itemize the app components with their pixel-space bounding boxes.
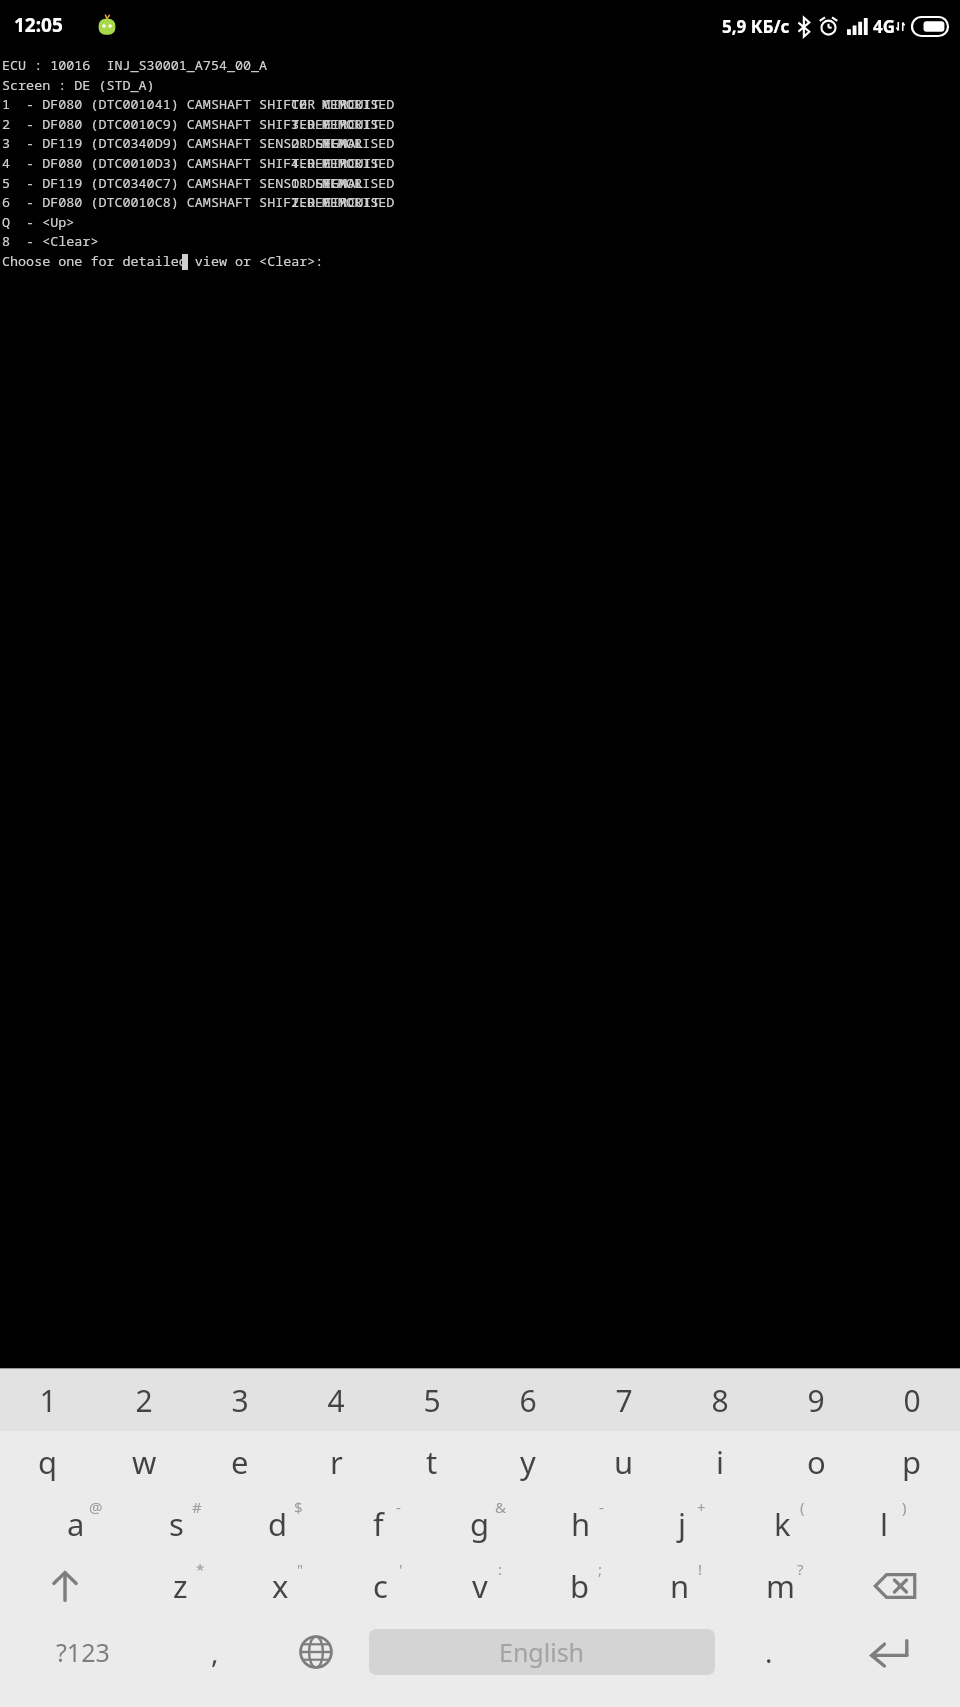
staticText: Choose one for detailed view or <Clear>:: [2, 252, 324, 270]
button[interactable]: 8: [672, 1369, 768, 1431]
staticText: 1.DEF: [291, 174, 332, 192]
button[interactable]: Change language: [265, 1617, 366, 1687]
staticText: ,: [211, 1633, 219, 1671]
staticText: l: [880, 1503, 888, 1545]
staticText: 0: [903, 1380, 921, 1421]
button[interactable]: 6: [480, 1369, 576, 1431]
button[interactable]: e: [192, 1431, 288, 1493]
staticText: &: [495, 1497, 506, 1517]
staticText: ': [399, 1559, 403, 1579]
button[interactable]: English: [369, 1629, 715, 1675]
button[interactable]: ,: [165, 1617, 265, 1687]
staticText: u: [614, 1441, 634, 1483]
staticText: 7: [615, 1380, 633, 1421]
staticText: #: [192, 1497, 202, 1517]
button[interactable]: m: [730, 1555, 830, 1617]
staticText: o: [807, 1441, 826, 1483]
button[interactable]: 4: [288, 1369, 384, 1431]
button[interactable]: w: [96, 1431, 192, 1493]
button[interactable]: q: [0, 1431, 96, 1493]
staticText: a: [67, 1503, 85, 1545]
staticText: -: [396, 1497, 401, 1517]
staticText: v: [472, 1565, 488, 1607]
button[interactable]: h: [530, 1493, 631, 1555]
button[interactable]: 3: [192, 1369, 288, 1431]
staticText: !: [698, 1559, 703, 1579]
staticText: 4G: [873, 15, 896, 38]
button[interactable]: j: [631, 1493, 732, 1555]
staticText: *: [196, 1559, 205, 1579]
staticText: 5: [423, 1380, 441, 1421]
button[interactable]: c: [330, 1555, 430, 1617]
staticText: m: [766, 1565, 795, 1607]
button[interactable]: v: [430, 1555, 530, 1617]
button[interactable]: 5: [384, 1369, 480, 1431]
button[interactable]: a: [26, 1493, 126, 1555]
staticText: y: [520, 1441, 536, 1483]
staticText: MEMORISED: [322, 193, 395, 211]
staticText: 5 - DF119 (DTC0340C7) CAMSHAFT SENSOR SI…: [2, 174, 364, 192]
staticText: .: [765, 1633, 773, 1671]
button[interactable]: 2: [96, 1369, 192, 1431]
staticText: 6: [519, 1380, 537, 1421]
staticText: g: [470, 1503, 490, 1545]
staticText: 4.DEF: [291, 154, 332, 172]
staticText: 2.DEF: [291, 193, 332, 211]
button[interactable]: Shift: [0, 1555, 130, 1617]
staticText: :: [498, 1559, 503, 1579]
button[interactable]: k: [732, 1493, 833, 1555]
staticText: MEMORISED: [322, 95, 395, 113]
staticText: w: [132, 1441, 157, 1483]
button[interactable]: Enter: [819, 1617, 960, 1687]
button[interactable]: n: [630, 1555, 730, 1617]
button[interactable]: z: [130, 1555, 230, 1617]
staticText: ?123: [56, 1635, 110, 1669]
button[interactable]: x: [230, 1555, 330, 1617]
staticText: d: [268, 1503, 288, 1545]
staticText: s: [169, 1503, 184, 1545]
staticText: k: [774, 1503, 791, 1545]
button[interactable]: i: [672, 1431, 768, 1493]
button[interactable]: p: [864, 1431, 960, 1493]
button[interactable]: s: [126, 1493, 227, 1555]
staticText: i: [716, 1441, 724, 1483]
button[interactable]: r: [288, 1431, 384, 1493]
staticText: ": [297, 1559, 304, 1579]
staticText: 8: [711, 1380, 729, 1421]
button[interactable]: t: [384, 1431, 480, 1493]
staticText: ): [902, 1497, 907, 1517]
staticText: 12:05: [14, 12, 63, 38]
staticText: 4: [327, 1380, 345, 1421]
button[interactable]: l: [833, 1493, 934, 1555]
staticText: ECU : 10016 INJ_S30001_A754_00_A: [2, 56, 268, 74]
button[interactable]: g: [429, 1493, 530, 1555]
button[interactable]: 0: [864, 1369, 960, 1431]
button[interactable]: f: [328, 1493, 429, 1555]
staticText: MEMORISED: [322, 115, 395, 133]
staticText: f: [373, 1503, 384, 1545]
staticText: Q - <Up>: [2, 213, 75, 231]
staticText: 1: [39, 1380, 57, 1421]
button[interactable]: Backspace: [830, 1555, 960, 1617]
staticText: ;: [598, 1559, 603, 1579]
staticText: C0: [291, 95, 308, 113]
button[interactable]: o: [768, 1431, 864, 1493]
staticText: +: [697, 1497, 706, 1517]
staticText: 4 - DF080 (DTC0010D3) CAMSHAFT SHIFTER C…: [2, 154, 380, 172]
staticText: MEMORISED: [322, 154, 395, 172]
button[interactable]: b: [530, 1555, 630, 1617]
button[interactable]: d: [227, 1493, 328, 1555]
staticText: 1 - DF080 (DTC001041) CAMSHAFT SHIFTER C…: [2, 95, 380, 113]
staticText: r: [330, 1441, 343, 1483]
staticText: c: [373, 1565, 388, 1607]
button[interactable]: 1: [0, 1369, 96, 1431]
button[interactable]: ?123: [0, 1617, 165, 1687]
button[interactable]: 7: [576, 1369, 672, 1431]
button[interactable]: .: [718, 1617, 819, 1687]
button[interactable]: u: [576, 1431, 672, 1493]
button[interactable]: y: [480, 1431, 576, 1493]
button[interactable]: 9: [768, 1369, 864, 1431]
staticText: ?: [797, 1559, 804, 1579]
staticText: 6 - DF080 (DTC0010C8) CAMSHAFT SHIFTER C…: [2, 193, 380, 211]
staticText: 5,9 КБ/c: [722, 15, 790, 38]
